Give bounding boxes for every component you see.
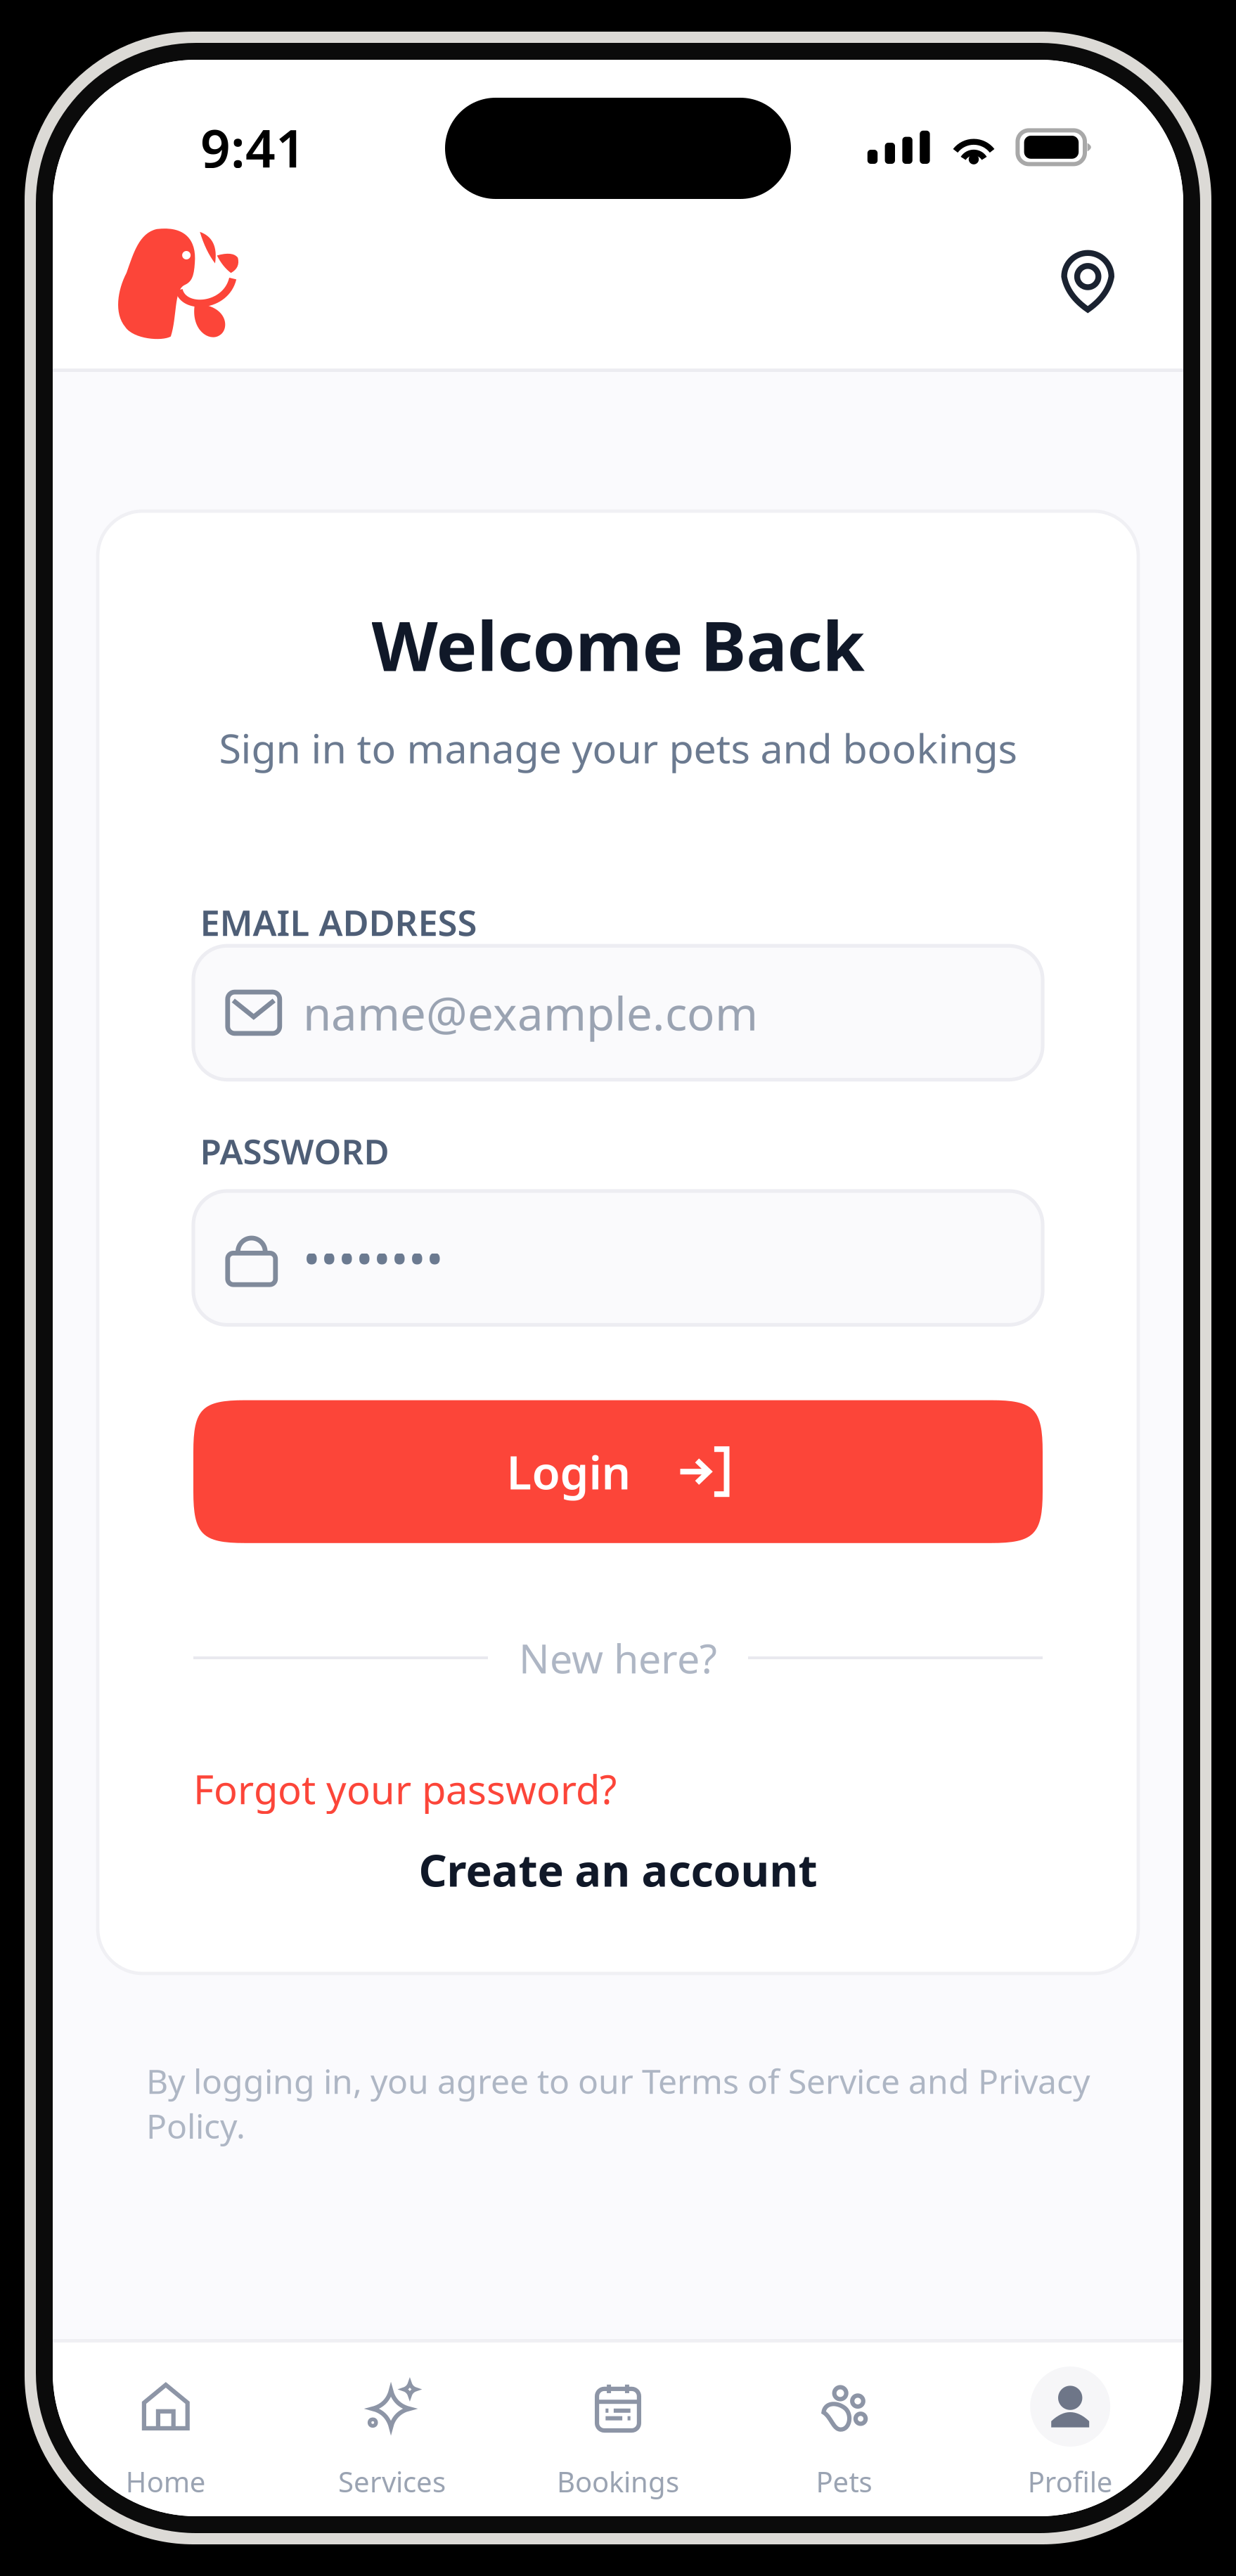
- staticText: PASSWORD: [200, 1128, 389, 1174]
- button[interactable]: Pawfect home: [53, 226, 240, 358]
- staticText: ••••••••: [303, 1227, 444, 1288]
- button[interactable]: Services: [279, 2339, 505, 2516]
- staticText: Services: [338, 2463, 446, 2500]
- staticText: Pets: [816, 2463, 872, 2500]
- button[interactable]: Bookings: [505, 2339, 731, 2516]
- button[interactable]: Location: [1061, 247, 1183, 336]
- button[interactable]: Login: [193, 1400, 1043, 1543]
- staticText: Forgot your password?: [193, 1763, 617, 1815]
- staticText: Login: [507, 1441, 631, 1502]
- button[interactable]: Home: [53, 2339, 279, 2516]
- button[interactable]: Profile: [957, 2339, 1183, 2516]
- staticText: 9:41: [200, 112, 306, 182]
- button[interactable]: Create an account: [193, 1840, 1043, 1899]
- staticText: Welcome Back: [372, 599, 864, 690]
- staticText: Sign in to manage your pets and bookings: [219, 721, 1017, 774]
- staticText: Create an account: [419, 1840, 817, 1899]
- staticText: Bookings: [557, 2463, 679, 2500]
- staticText: New here?: [519, 1631, 717, 1685]
- staticText: By logging in, you agree to our Terms of…: [146, 2058, 1090, 2148]
- button[interactable]: Pets: [731, 2339, 957, 2516]
- staticText: Profile: [1028, 2463, 1113, 2500]
- staticText: Home: [126, 2463, 206, 2500]
- staticText: EMAIL ADDRESS: [200, 899, 477, 946]
- button[interactable]: Forgot your password?: [193, 1763, 1043, 1815]
- staticText: name@example.com: [303, 982, 758, 1043]
